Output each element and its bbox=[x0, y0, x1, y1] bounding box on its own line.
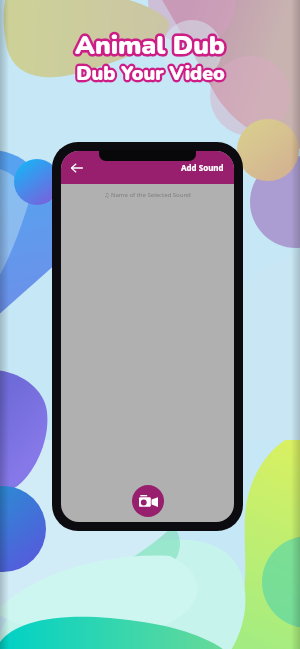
staticText: ♫ Name of the Selected Sound bbox=[104, 191, 191, 199]
button[interactable]: Record video bbox=[132, 485, 164, 517]
staticText: Dub Your Video bbox=[76, 60, 225, 87]
staticText: Dub Your Video bbox=[76, 60, 225, 87]
button[interactable]: Back bbox=[61, 151, 234, 184]
staticText: Animal Dub bbox=[75, 28, 225, 63]
staticText: Animal Dub bbox=[75, 28, 225, 63]
staticText: Add Sound bbox=[181, 162, 224, 173]
button[interactable]: Back bbox=[70, 161, 84, 175]
